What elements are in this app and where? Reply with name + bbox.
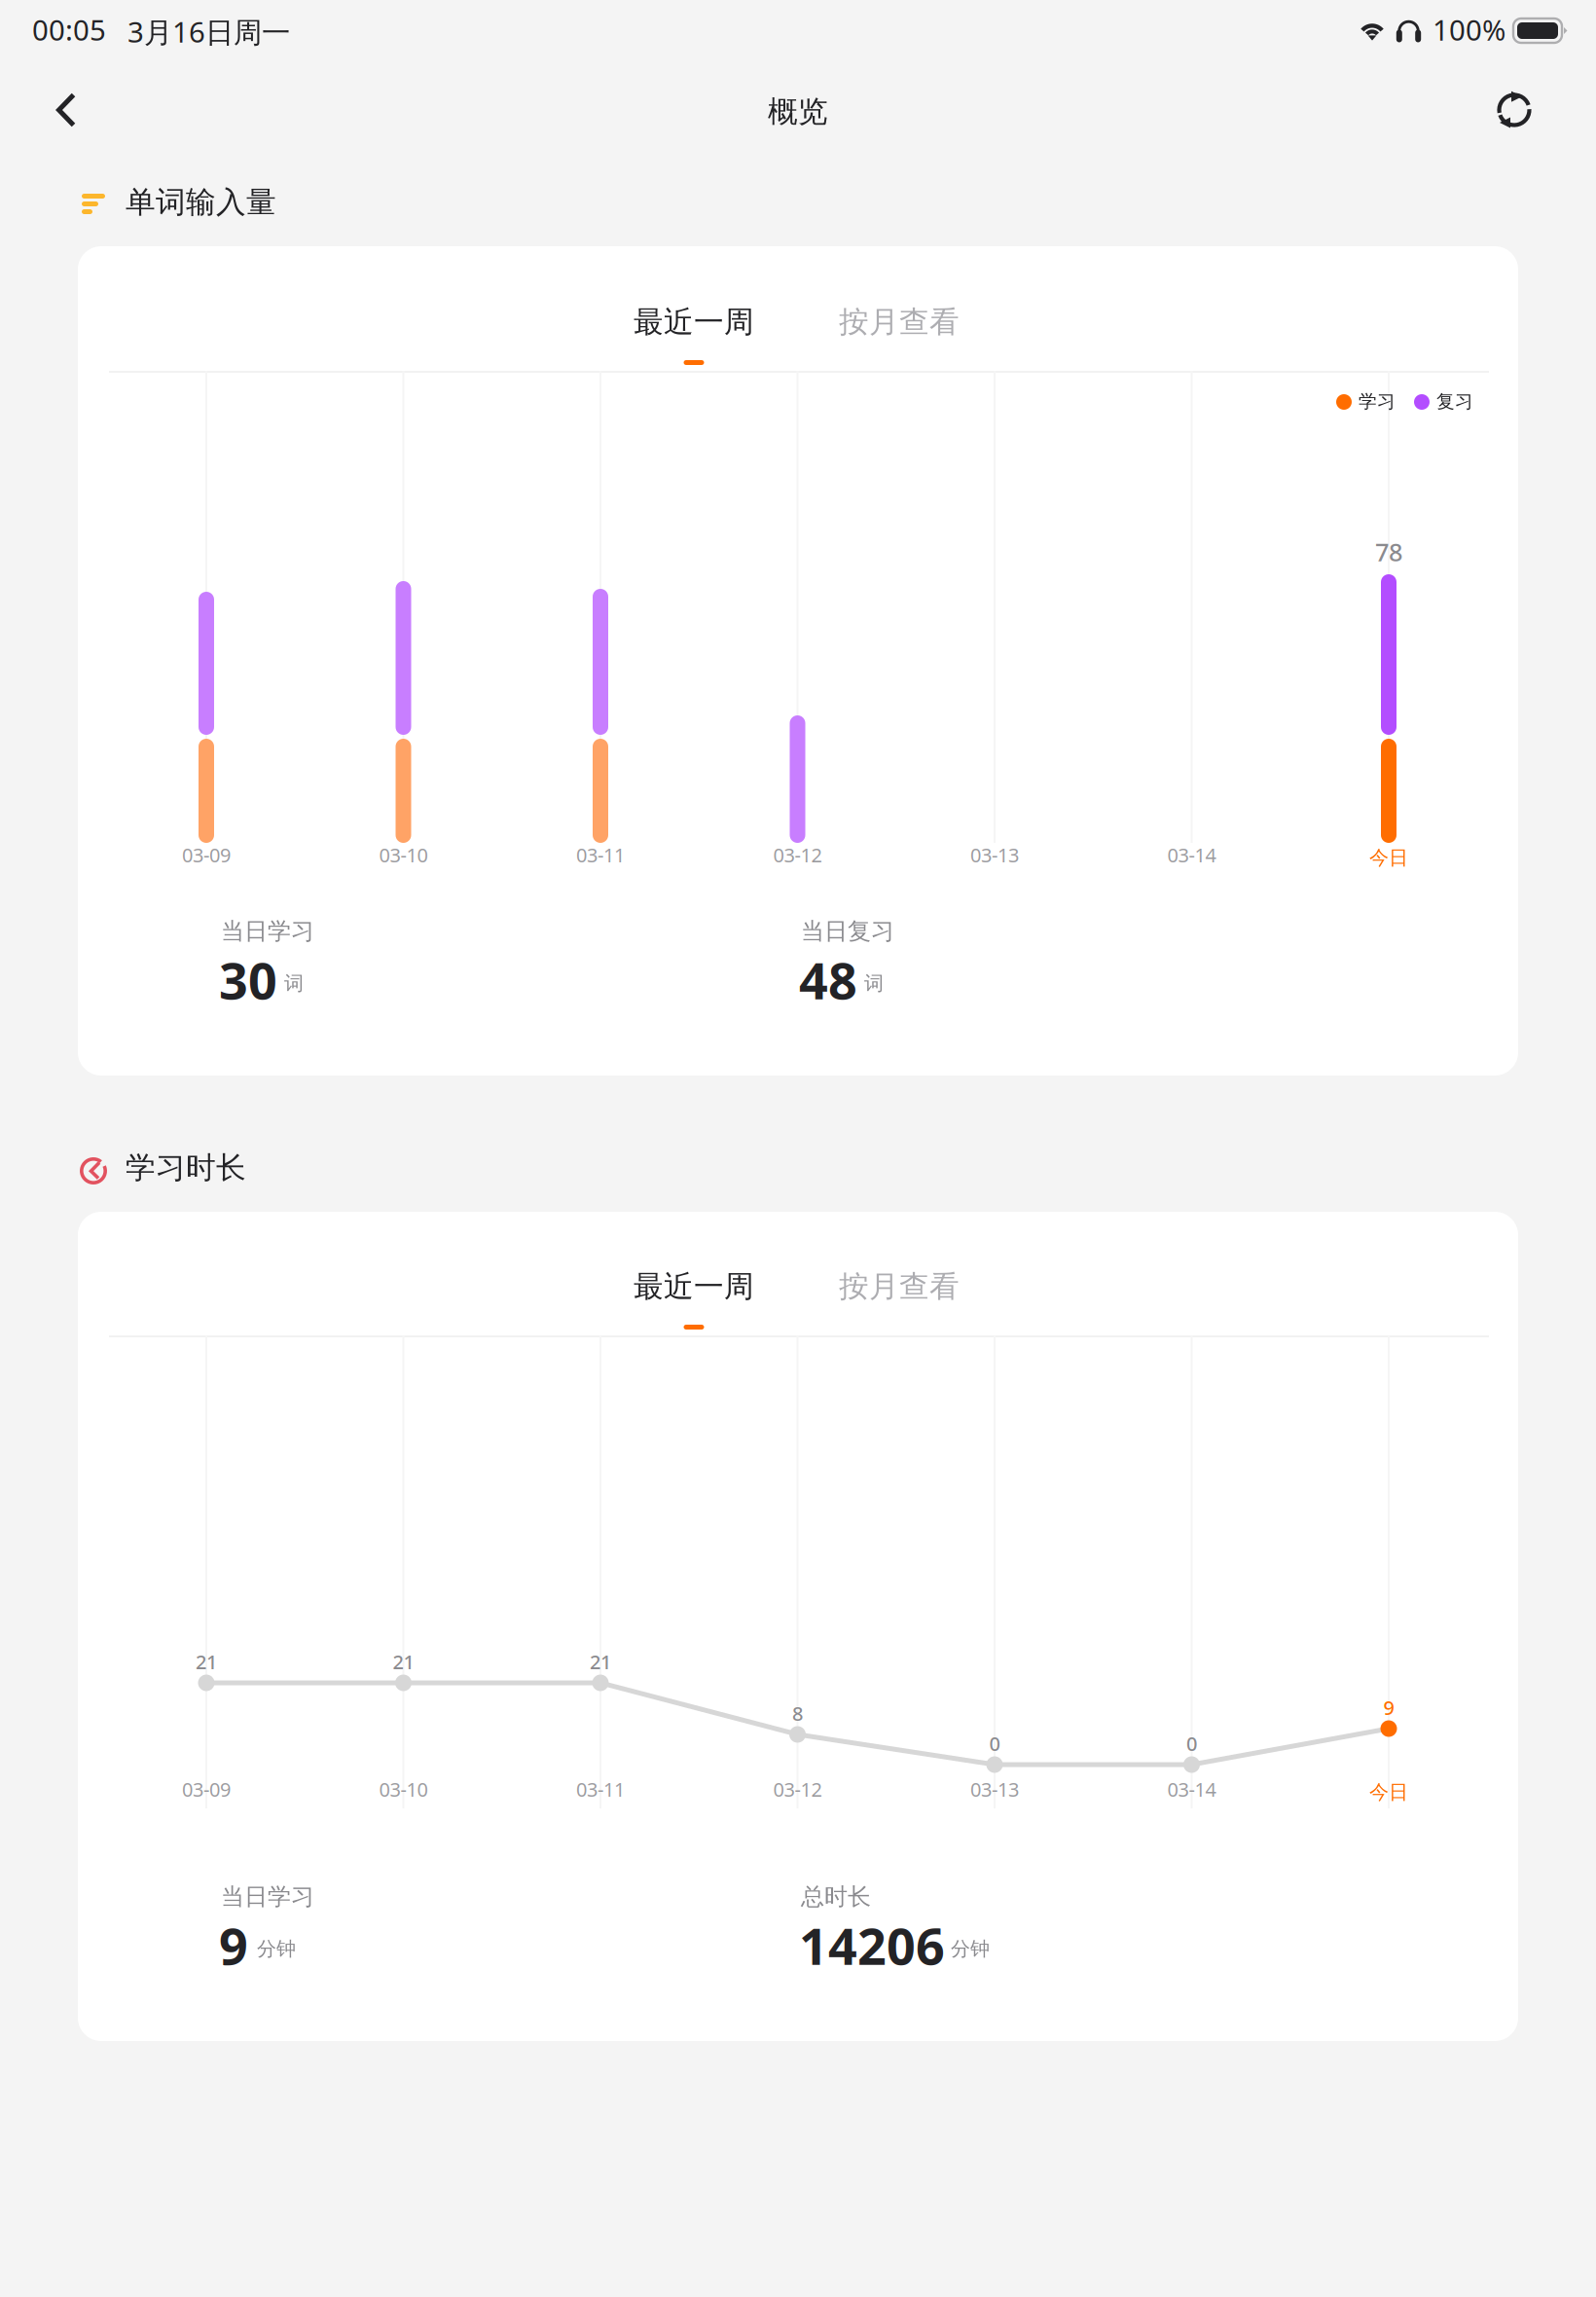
staticText: 当日学习	[221, 1882, 314, 1911]
staticText: 9	[219, 1912, 248, 1979]
staticText: 03-13	[970, 1776, 1019, 1802]
staticText: 48	[799, 946, 857, 1013]
button[interactable]: 最近一周	[592, 1272, 796, 1342]
staticText: 21	[196, 1649, 217, 1675]
staticText: 学习时长	[126, 1149, 246, 1186]
staticText: 14206	[799, 1912, 945, 1979]
staticText: 03-13	[970, 842, 1019, 868]
staticText: 最近一周	[634, 304, 754, 340]
staticText: 03-10	[379, 1776, 428, 1802]
staticText: 8	[792, 1700, 803, 1726]
staticText: 3月16日周一	[127, 13, 290, 51]
staticText: 03-14	[1167, 1776, 1216, 1802]
staticText: 03-11	[576, 1776, 625, 1802]
staticText: 21	[590, 1649, 611, 1675]
button[interactable]: 最近一周	[592, 308, 796, 378]
staticText: 分钟	[257, 1937, 296, 1961]
staticText: 30	[219, 946, 277, 1013]
staticText: 00:05	[32, 11, 106, 49]
button[interactable]: 按月查看	[797, 1272, 1001, 1319]
staticText: 03-14	[1167, 842, 1216, 868]
staticText: 复习	[1436, 390, 1473, 413]
staticText: 按月查看	[839, 304, 960, 340]
staticText: 0	[1186, 1731, 1197, 1756]
staticText: 概览	[768, 93, 828, 130]
staticText: 当日复习	[801, 917, 894, 946]
button[interactable]: 返回	[18, 66, 115, 154]
staticText: 词	[284, 971, 304, 995]
staticText: 100%	[1433, 11, 1505, 49]
staticText: 单词输入量	[126, 184, 276, 221]
staticText: 03-12	[773, 1776, 822, 1802]
staticText: 最近一周	[634, 1268, 754, 1305]
staticText: 今日	[1369, 1780, 1408, 1804]
staticText: 0	[989, 1731, 1000, 1756]
staticText: 21	[393, 1649, 414, 1675]
staticText: 按月查看	[839, 1268, 960, 1305]
staticText: 学习	[1359, 390, 1396, 413]
staticText: 03-12	[773, 842, 822, 868]
staticText: 词	[864, 971, 884, 995]
staticText: 03-09	[182, 1776, 231, 1802]
staticText: 03-10	[379, 842, 428, 868]
button[interactable]: 按月查看	[797, 308, 1001, 354]
staticText: 9	[1383, 1695, 1394, 1720]
staticText: 分钟	[951, 1937, 990, 1961]
button[interactable]: 刷新	[1466, 66, 1563, 154]
staticText: 78	[1375, 535, 1402, 568]
staticText: 今日	[1369, 846, 1408, 870]
staticText: 03-11	[576, 842, 625, 868]
staticText: 总时长	[801, 1882, 871, 1911]
staticText: 当日学习	[221, 917, 314, 946]
staticText: 03-09	[182, 842, 231, 868]
